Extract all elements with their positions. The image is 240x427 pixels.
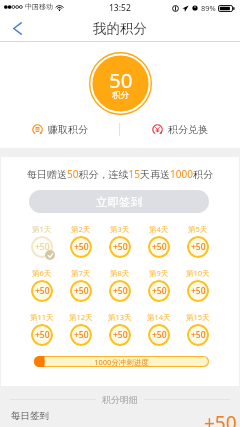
- staticText: +50: [74, 329, 89, 341]
- staticText: 每日签到: [11, 410, 49, 422]
- staticText: +50: [152, 329, 167, 341]
- staticText: 第13天: [108, 312, 132, 322]
- staticText: 89%: [201, 3, 216, 13]
- staticText: +50: [152, 241, 167, 253]
- staticText: +50: [35, 329, 50, 341]
- staticText: 1000分冲刺进度: [34, 357, 209, 367]
- staticText: +50: [113, 241, 128, 253]
- button[interactable]: +50: [70, 280, 92, 302]
- button[interactable]: +50: [187, 324, 209, 346]
- staticText: 第1天: [32, 224, 52, 234]
- staticText: 积分: [112, 90, 129, 101]
- staticText: 第14天: [147, 312, 171, 322]
- staticText: 第11天: [30, 312, 54, 322]
- staticText: +50: [113, 329, 128, 341]
- button[interactable]: +50: [70, 236, 92, 258]
- button[interactable]: +50: [148, 236, 170, 258]
- staticText: 50: [109, 66, 133, 94]
- button[interactable]: +50: [70, 324, 92, 346]
- staticText: 第7天: [71, 268, 91, 278]
- button[interactable]: +50: [109, 324, 131, 346]
- staticText: 我的积分: [93, 20, 147, 37]
- staticText: +50: [35, 285, 50, 297]
- staticText: 积分兑换: [168, 123, 208, 136]
- staticText: 中国移动: [25, 2, 53, 11]
- button[interactable]: +50: [187, 280, 209, 302]
- staticText: +50: [35, 241, 50, 253]
- staticText: 第4天: [149, 224, 169, 234]
- staticText: +50: [152, 285, 167, 297]
- staticText: 第2天: [71, 224, 91, 234]
- staticText: 第12天: [69, 312, 93, 322]
- staticText: 第8天: [110, 268, 130, 278]
- button[interactable]: 积分兑换: [120, 119, 240, 139]
- button[interactable]: +50: [109, 280, 131, 302]
- button[interactable]: 赚取积分: [0, 119, 119, 139]
- staticText: 第9天: [149, 268, 169, 278]
- staticText: 第6天: [32, 268, 52, 278]
- staticText: 积分明细: [102, 394, 138, 404]
- staticText: 第3天: [110, 224, 130, 234]
- staticText: 立即签到: [96, 195, 142, 209]
- button[interactable]: +50: [148, 324, 170, 346]
- button[interactable]: +50: [31, 236, 53, 258]
- button[interactable]: Back: [5, 16, 29, 40]
- button[interactable]: +50: [187, 236, 209, 258]
- button[interactable]: +50: [31, 324, 53, 346]
- staticText: 第10天: [186, 268, 210, 278]
- staticText: 每日赠送50积分，连续15天再送1000积分: [1, 167, 239, 181]
- staticText: +50: [191, 241, 206, 253]
- staticText: +50: [113, 285, 128, 297]
- staticText: 赚取积分: [48, 123, 88, 136]
- staticText: +50: [74, 285, 89, 297]
- staticText: +50: [191, 329, 206, 341]
- staticText: +50: [204, 410, 237, 427]
- button[interactable]: +50: [31, 280, 53, 302]
- staticText: +50: [191, 285, 206, 297]
- staticText: +50: [74, 241, 89, 253]
- staticText: 第15天: [186, 312, 210, 322]
- staticText: 13:52: [109, 2, 131, 14]
- button[interactable]: +50: [109, 236, 131, 258]
- button[interactable]: 立即签到: [29, 190, 209, 213]
- staticText: 第5天: [188, 224, 208, 234]
- button[interactable]: +50: [148, 280, 170, 302]
